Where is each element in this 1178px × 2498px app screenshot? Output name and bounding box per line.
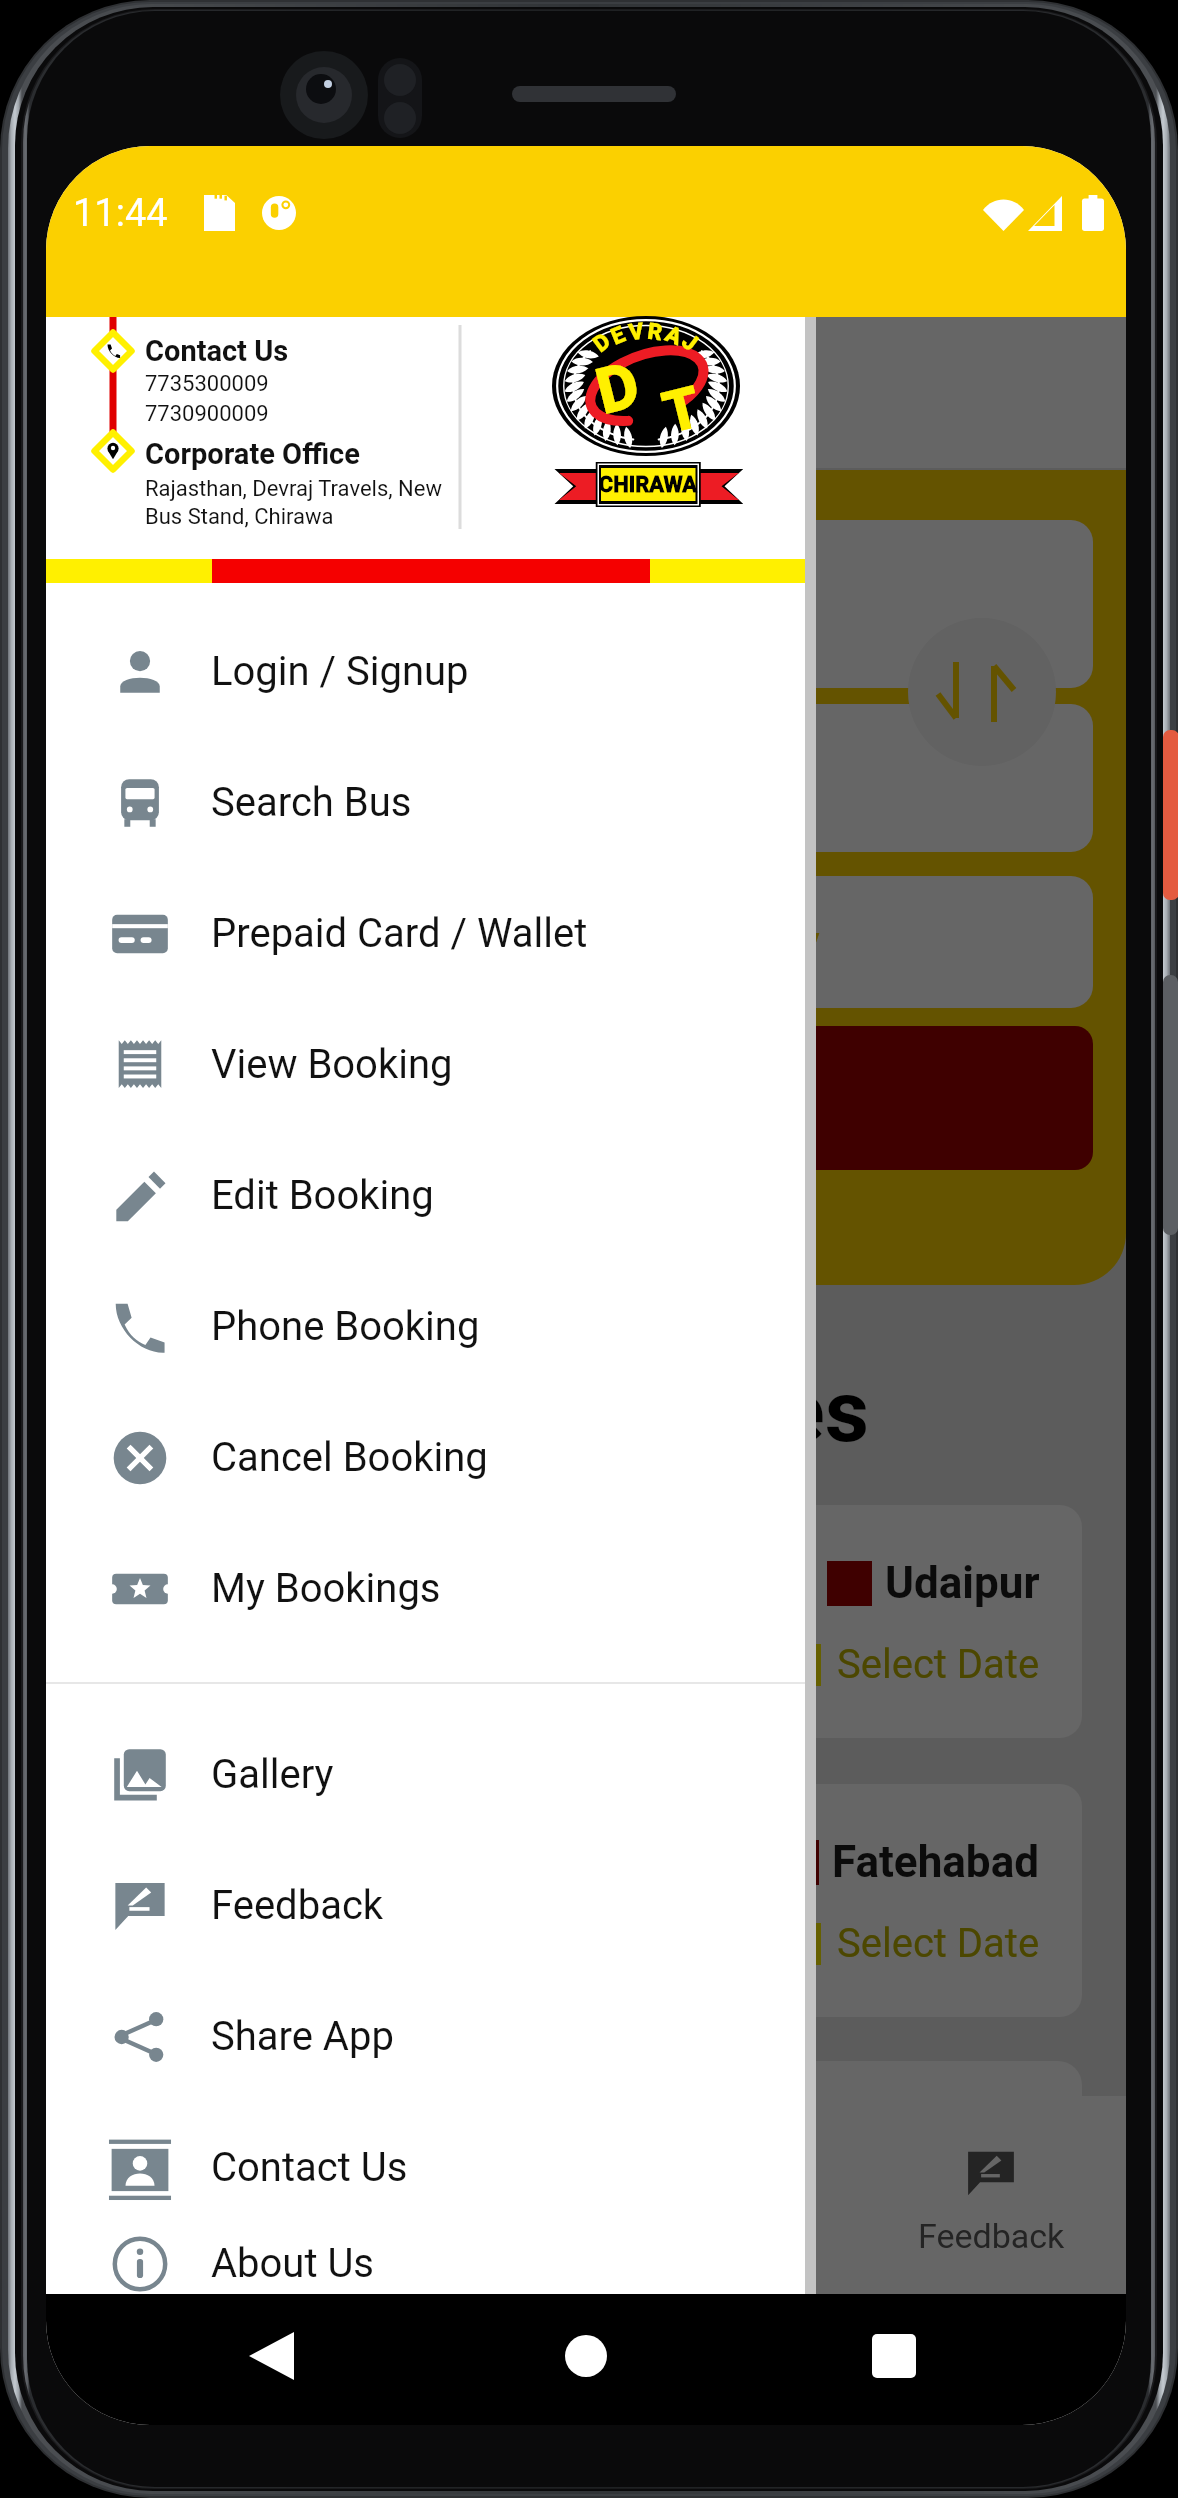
staticText: Gallery bbox=[211, 1751, 334, 1798]
staticText: 7730900009 bbox=[145, 401, 269, 427]
staticText: Search Bus bbox=[211, 779, 412, 826]
staticText: Phone Booking bbox=[211, 1303, 480, 1350]
button[interactable]: Contact Us bbox=[46, 2102, 805, 2233]
button[interactable]: Home bbox=[46, 2147, 316, 2294]
staticText: 11:44 bbox=[73, 191, 168, 236]
button[interactable]: Cancel Booking bbox=[46, 1392, 805, 1523]
button[interactable]: Search Bus bbox=[46, 737, 805, 868]
staticText: Same day bbox=[353, 915, 554, 969]
button[interactable]: Feedback bbox=[856, 2147, 1126, 2294]
staticText: Prepaid Card / Wallet bbox=[211, 910, 588, 957]
button[interactable]: Recent apps bbox=[803, 2294, 985, 2425]
button[interactable]: Share App bbox=[46, 1971, 805, 2102]
staticText: View Booking bbox=[211, 1041, 453, 1088]
staticText: Contact Us bbox=[145, 334, 289, 368]
staticText: Select Date bbox=[837, 1641, 1040, 1688]
button[interactable]: Prepaid Card / Wallet bbox=[46, 868, 805, 999]
staticText: Feedback bbox=[918, 2216, 1065, 2256]
button[interactable]: My Bookings bbox=[46, 1523, 805, 1654]
button[interactable]: Back bbox=[180, 2294, 362, 2425]
button[interactable]: Home bbox=[495, 2294, 677, 2425]
staticText: Popular Bus Routes bbox=[107, 1361, 870, 1462]
staticText: Corporate Office bbox=[145, 437, 360, 471]
button[interactable]: Login / Signup bbox=[46, 606, 805, 737]
staticText: Bus Stand, Chirawa bbox=[145, 504, 334, 530]
button[interactable]: Search bbox=[316, 2147, 586, 2294]
staticText: Select Date bbox=[837, 1920, 1040, 1967]
staticText: Home bbox=[135, 2216, 227, 2256]
staticText: 7735300009 bbox=[145, 371, 269, 397]
staticText: My Bookings bbox=[211, 1565, 441, 1612]
button[interactable]: Feedback bbox=[46, 1840, 805, 1971]
staticText: Share App bbox=[211, 2013, 394, 2060]
button[interactable]: Delhi bbox=[90, 1784, 1082, 2017]
button[interactable]: Booking bbox=[586, 2147, 856, 2294]
button[interactable]: Jaipur bbox=[90, 1505, 1082, 1738]
staticText: Udaipur bbox=[885, 1557, 1040, 1609]
staticText: Contact Us bbox=[211, 2144, 408, 2191]
staticText: Login / Signup bbox=[211, 648, 469, 695]
staticText: Fatehabad bbox=[832, 1836, 1040, 1888]
staticText: Feedback bbox=[211, 1882, 384, 1929]
staticText: Edit Booking bbox=[211, 1172, 434, 1219]
staticText: Cancel Booking bbox=[211, 1434, 488, 1481]
staticText: About Us bbox=[211, 2240, 375, 2287]
staticText: Next day bbox=[641, 915, 820, 969]
button[interactable]: About Us bbox=[46, 2233, 805, 2294]
button[interactable]: Gallery bbox=[46, 1709, 805, 1840]
staticText: Rajasthan, Devraj Travels, New bbox=[145, 476, 442, 502]
button[interactable]: Edit Booking bbox=[46, 1130, 805, 1261]
staticText: Select Date bbox=[147, 1641, 350, 1688]
staticText: Jaipur bbox=[182, 1557, 308, 1609]
button[interactable]: View Booking bbox=[46, 999, 805, 1130]
button[interactable]: Phone Booking bbox=[46, 1261, 805, 1392]
